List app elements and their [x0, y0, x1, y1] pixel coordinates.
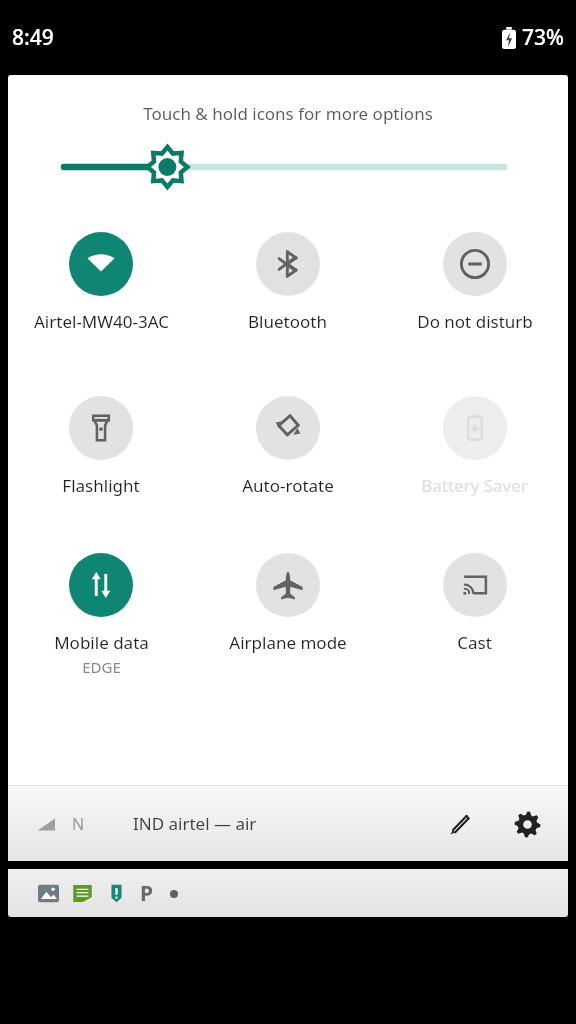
staticText: Auto-rotate — [242, 474, 334, 497]
staticText: N — [72, 813, 85, 835]
staticText: IND airtel — air — [133, 812, 257, 835]
button[interactable]: Brightness — [8, 147, 568, 187]
staticText: Bluetooth — [248, 310, 327, 333]
staticText: Airtel-MW40-3AC — [34, 310, 169, 333]
staticText: EDGE — [82, 657, 121, 677]
button[interactable]: Auto-rotate — [194, 396, 381, 497]
button[interactable]: Wi-Fi — [8, 232, 194, 333]
button[interactable]: Mobile data — [8, 553, 194, 677]
staticText: Flashlight — [62, 474, 140, 497]
staticText: P — [140, 879, 154, 908]
staticText: 73% — [522, 23, 564, 52]
button[interactable]: Edit — [436, 801, 482, 847]
button[interactable]: Airplane mode — [194, 553, 381, 654]
button[interactable]: Do not disturb — [381, 232, 568, 333]
staticText: Touch & hold icons for more options — [8, 102, 568, 125]
staticText: Cast — [457, 631, 492, 654]
button[interactable]: Bluetooth — [194, 232, 381, 333]
button[interactable]: Cast — [381, 553, 568, 654]
staticText: Do not disturb — [417, 310, 533, 333]
staticText: Battery Saver — [421, 474, 528, 497]
staticText: Mobile data — [54, 631, 149, 654]
button[interactable]: Flashlight — [8, 396, 194, 497]
staticText: Airplane mode — [229, 631, 347, 654]
button[interactable]: Settings — [504, 801, 550, 847]
button[interactable]: Battery Saver — [381, 396, 568, 497]
staticText: 8:49 — [12, 23, 54, 52]
